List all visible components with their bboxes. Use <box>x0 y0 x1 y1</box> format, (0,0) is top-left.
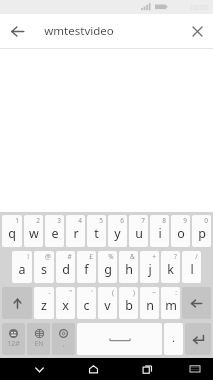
staticText: ( <box>112 288 114 297</box>
staticText: c <box>83 297 90 314</box>
button[interactable]: ( <box>98 287 117 319</box>
button[interactable]: . <box>164 323 183 355</box>
button[interactable]: / <box>182 251 201 283</box>
staticText: wmtestvideo <box>44 23 114 39</box>
staticText: g <box>104 261 112 278</box>
staticText: i <box>158 225 162 242</box>
button[interactable]: 4 <box>66 215 85 247</box>
button[interactable]: ) <box>119 287 138 319</box>
staticText: j <box>148 261 152 278</box>
staticText: 0 <box>204 216 208 225</box>
button[interactable]: Shift <box>2 287 32 319</box>
staticText: 6 <box>120 216 124 225</box>
button[interactable]: + <box>140 251 159 283</box>
staticText: 12# <box>7 339 20 349</box>
button[interactable]: 5 <box>87 215 106 247</box>
button[interactable]: Language <box>27 323 50 355</box>
staticText: m <box>165 297 177 314</box>
button[interactable]: ~ <box>140 287 159 319</box>
staticText: ' <box>91 288 93 297</box>
staticText: v <box>104 297 111 314</box>
button[interactable]: 7 <box>129 215 148 247</box>
staticText: " <box>69 288 72 297</box>
staticText: k <box>167 261 174 278</box>
button[interactable]: 2 <box>24 215 43 247</box>
button[interactable]: " <box>56 287 75 319</box>
staticText: / <box>195 252 198 261</box>
staticText: & <box>130 252 135 261</box>
staticText: % <box>108 252 114 261</box>
staticText: x <box>62 297 69 314</box>
staticText: + <box>152 252 156 261</box>
staticText: t <box>94 225 99 242</box>
staticText: f <box>84 261 89 278</box>
button[interactable]: 8 <box>150 215 169 247</box>
staticText: h <box>125 261 133 278</box>
button[interactable]: £ <box>77 251 96 283</box>
button[interactable]: 3 <box>45 215 64 247</box>
staticText: 9 <box>183 216 187 225</box>
button[interactable]: Settings <box>52 323 75 355</box>
staticText: - <box>48 288 51 297</box>
staticText: u <box>135 225 143 242</box>
staticText: s <box>41 261 47 278</box>
button[interactable]: ' <box>77 287 96 319</box>
staticText: d <box>62 261 70 278</box>
staticText: a <box>18 261 26 278</box>
button[interactable]: Enter <box>185 323 211 355</box>
button[interactable]: : <box>161 287 180 319</box>
staticText: @ <box>45 252 51 261</box>
staticText: ! <box>27 252 29 261</box>
button[interactable]: Space <box>77 323 162 355</box>
staticText: p <box>198 225 206 242</box>
staticText: 1 <box>15 216 19 225</box>
button[interactable]: Home <box>80 358 106 380</box>
button[interactable]: ? <box>161 251 180 283</box>
button[interactable]: Recent apps <box>134 358 160 380</box>
button[interactable]: Clear <box>181 15 213 47</box>
staticText: 3 <box>57 216 61 225</box>
button[interactable]: & <box>119 251 138 283</box>
staticText: 10:00 <box>189 2 209 12</box>
staticText: ? <box>174 252 177 261</box>
staticText: 7 <box>141 216 145 225</box>
staticText: w <box>29 225 39 242</box>
button[interactable]: Backspace <box>182 287 211 319</box>
button[interactable]: Hide keyboard <box>184 358 206 380</box>
staticText: e <box>51 225 59 242</box>
button[interactable]: 1 <box>2 215 22 247</box>
staticText: 8 <box>162 216 166 225</box>
staticText: 5 <box>99 216 103 225</box>
button[interactable]: ! <box>12 251 32 283</box>
button[interactable]: @ <box>34 251 54 283</box>
staticText: 4 <box>78 216 82 225</box>
staticText: n <box>146 297 154 314</box>
staticText: o <box>177 225 185 242</box>
staticText: 2 <box>36 216 40 225</box>
staticText: b <box>125 297 133 314</box>
button[interactable]: Back <box>26 358 52 380</box>
staticText: # <box>67 252 72 261</box>
button[interactable]: # <box>56 251 75 283</box>
button[interactable]: Symbols <box>2 323 25 355</box>
button[interactable]: 6 <box>108 215 127 247</box>
staticText: , <box>63 339 65 349</box>
staticText: £ <box>89 252 93 261</box>
staticText: : <box>175 288 177 297</box>
staticText: ~ <box>152 288 156 297</box>
staticText: y <box>114 225 121 242</box>
staticText: . <box>172 330 175 345</box>
staticText: ) <box>133 288 135 297</box>
staticText: q <box>8 225 16 242</box>
button[interactable]: - <box>34 287 54 319</box>
staticText: EN <box>34 339 44 349</box>
staticText: r <box>73 225 79 242</box>
button[interactable]: % <box>98 251 117 283</box>
staticText: l <box>190 261 194 278</box>
button[interactable]: 9 <box>171 215 190 247</box>
button[interactable]: 0 <box>192 215 211 247</box>
button[interactable]: Back <box>0 14 34 48</box>
staticText: z <box>41 297 47 314</box>
